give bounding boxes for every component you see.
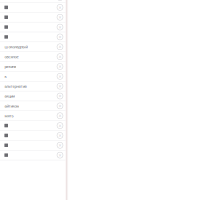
button[interactable]: Clear — [55, 0, 65, 2]
staticText: × — [58, 4, 61, 11]
button[interactable]: × — [0, 12, 66, 22]
staticText: × — [58, 33, 61, 40]
staticText: × — [58, 63, 61, 70]
staticText: × — [58, 53, 61, 60]
button[interactable]: Clear — [55, 61, 65, 71]
button[interactable]: Clear — [55, 32, 65, 42]
staticText: × — [58, 23, 61, 31]
staticText: × — [58, 43, 61, 50]
staticText: овсяное — [4, 54, 18, 59]
staticText: резина — [4, 64, 16, 69]
button[interactable]: акции — [0, 91, 66, 101]
staticText: шоколадный — [4, 44, 27, 49]
button[interactable]: × — [0, 140, 66, 150]
staticText: альтернатив — [4, 83, 26, 89]
button[interactable]: овсяное — [0, 52, 66, 62]
button[interactable]: шоколадный — [0, 42, 66, 52]
button[interactable]: Clear — [55, 52, 65, 61]
button[interactable]: айтиком — [0, 101, 66, 111]
button[interactable]: Clear — [55, 2, 65, 12]
button[interactable]: Clear — [55, 121, 65, 130]
button[interactable]: × — [0, 0, 66, 3]
staticText: × — [58, 73, 61, 80]
staticText: × — [58, 142, 61, 149]
button[interactable]: Clear — [55, 42, 65, 52]
staticText: × — [58, 112, 61, 119]
button[interactable]: Clear — [55, 111, 65, 121]
button[interactable]: Clear — [55, 101, 65, 111]
button[interactable]: к — [0, 72, 66, 81]
button[interactable]: × — [0, 131, 66, 140]
button[interactable]: × — [0, 121, 66, 131]
button[interactable]: Clear — [55, 71, 65, 81]
button[interactable]: × — [0, 22, 66, 32]
button[interactable]: Clear — [55, 91, 65, 101]
staticText: к — [4, 74, 6, 79]
staticText: × — [58, 102, 61, 109]
button[interactable]: Clear — [55, 12, 65, 22]
staticText: × — [58, 14, 61, 21]
staticText: × — [58, 92, 61, 100]
button[interactable]: альтернатив — [0, 81, 66, 91]
button[interactable]: × — [0, 150, 66, 160]
button[interactable]: Clear — [55, 130, 65, 140]
staticText: айтиком — [4, 103, 19, 108]
button[interactable]: Clear — [55, 81, 65, 91]
button[interactable]: × — [0, 3, 66, 12]
button[interactable]: мять — [0, 111, 66, 121]
staticText: × — [58, 132, 61, 139]
staticText: × — [58, 122, 61, 129]
button[interactable]: резина — [0, 62, 66, 72]
staticText: × — [58, 83, 61, 90]
staticText: × — [58, 152, 61, 159]
button[interactable]: × — [0, 32, 66, 42]
button[interactable]: Clear — [55, 150, 65, 160]
button[interactable]: Clear — [55, 140, 65, 150]
staticText: мять — [4, 113, 13, 118]
button[interactable]: Clear — [55, 22, 65, 32]
staticText: акции — [4, 93, 14, 99]
